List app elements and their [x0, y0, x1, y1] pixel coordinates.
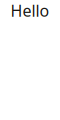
staticText: Hello: [10, 0, 49, 21]
